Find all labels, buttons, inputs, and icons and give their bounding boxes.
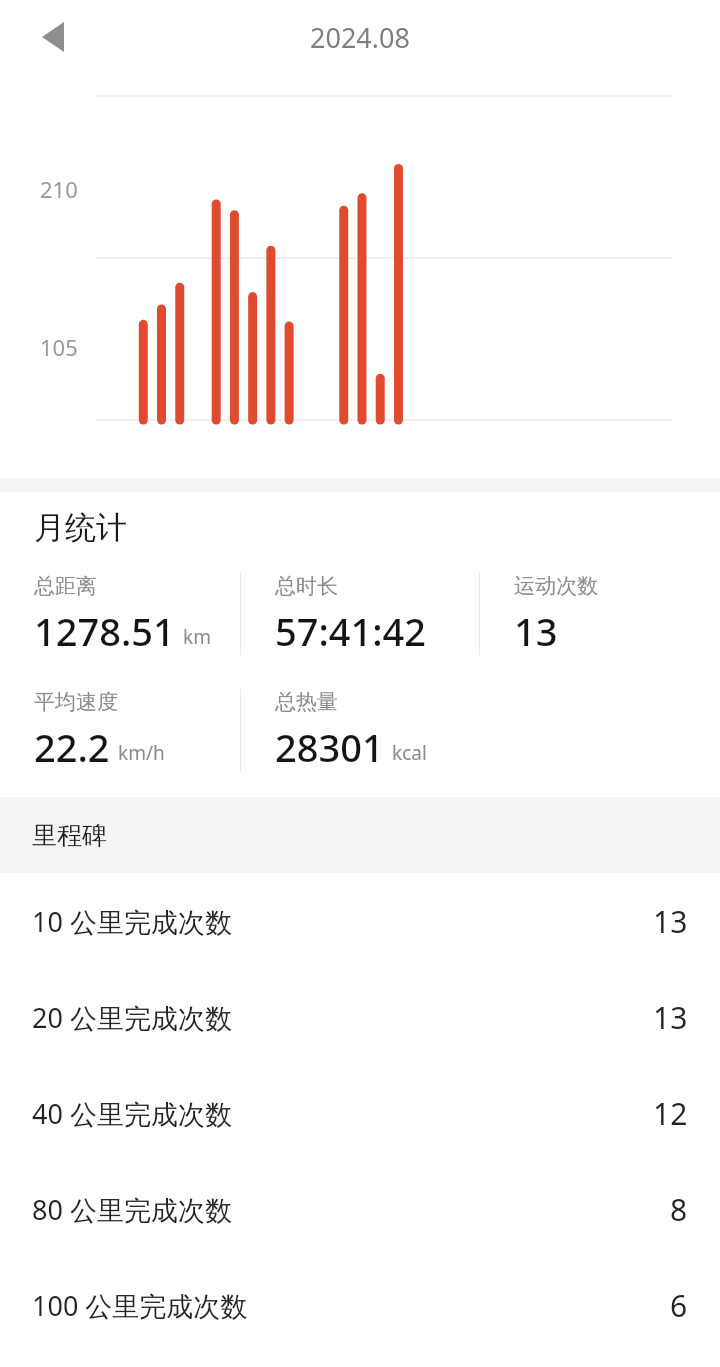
staticText: 0 <box>65 498 78 528</box>
staticText: kcal <box>392 740 427 766</box>
staticText: 2024.08 <box>310 19 410 56</box>
staticText: 210 <box>40 174 78 204</box>
button[interactable]: 10 公里完成次数 <box>0 873 720 969</box>
staticText: 运动次数 <box>514 573 598 599</box>
staticText: km/h <box>118 740 165 766</box>
staticText: 12 <box>653 1093 688 1134</box>
staticText: 总距离 <box>34 573 97 599</box>
staticText: 总时长 <box>275 573 338 599</box>
staticText: 22.2 <box>34 721 110 771</box>
staticText: 8 <box>670 1189 688 1230</box>
staticText: 13 <box>653 901 688 942</box>
staticText: 100 公里完成次数 <box>32 1287 248 1324</box>
staticText: 10 公里完成次数 <box>32 903 232 940</box>
button[interactable]: 20 公里完成次数 <box>0 969 720 1065</box>
staticText: 13 <box>514 605 558 655</box>
staticText: 105 <box>40 332 78 362</box>
staticText: 20 公里完成次数 <box>32 999 232 1036</box>
staticText: 6 <box>670 1285 688 1326</box>
staticText: 平均速度 <box>34 689 118 715</box>
staticText: 80 公里完成次数 <box>32 1191 232 1228</box>
button[interactable]: 80 公里完成次数 <box>0 1161 720 1257</box>
button[interactable]: 40 公里完成次数 <box>0 1065 720 1161</box>
staticText: 13 <box>653 997 688 1038</box>
staticText: 月统计 <box>34 508 127 547</box>
staticText: 57:41:42 <box>275 605 427 655</box>
staticText: 40 公里完成次数 <box>32 1095 232 1132</box>
staticText: 总热量 <box>275 689 338 715</box>
staticText: km <box>183 624 211 650</box>
button[interactable]: 100 公里完成次数 <box>0 1257 720 1353</box>
button[interactable]: Back <box>26 10 80 64</box>
staticText: 1278.51 <box>34 605 175 655</box>
staticText: 28301 <box>275 721 384 771</box>
staticText: 里程碑 <box>32 820 107 851</box>
